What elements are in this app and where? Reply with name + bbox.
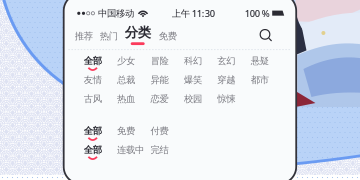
- staticText: 玄幻: [217, 55, 235, 67]
- button[interactable]: 科幻: [184, 55, 217, 71]
- button[interactable]: 异能: [150, 74, 184, 90]
- button[interactable]: 连载中: [117, 144, 150, 160]
- button[interactable]: 冒险: [150, 55, 184, 71]
- staticText: 爆笑: [184, 74, 202, 86]
- staticText: 少女: [117, 55, 135, 67]
- staticText: 热血: [117, 93, 135, 105]
- staticText: 全部: [84, 144, 102, 156]
- staticText: 完结: [150, 144, 168, 156]
- button[interactable]: 完结: [150, 144, 184, 160]
- button[interactable]: 爆笑: [184, 74, 217, 90]
- button[interactable]: 友情: [84, 74, 117, 90]
- staticText: 推荐: [75, 30, 93, 42]
- staticText: 校园: [184, 93, 202, 105]
- staticText: 免费: [117, 125, 135, 137]
- button[interactable]: 都市: [251, 74, 284, 90]
- button[interactable]: 全部: [84, 55, 117, 71]
- button[interactable]: 悬疑: [251, 55, 284, 71]
- button[interactable]: 热血: [117, 93, 150, 109]
- staticText: 异能: [150, 74, 168, 86]
- staticText: 免费: [159, 30, 177, 42]
- staticText: 连载中: [117, 144, 144, 156]
- staticText: 总裁: [117, 74, 135, 86]
- button[interactable]: 玄幻: [217, 55, 251, 71]
- button[interactable]: 恋爱: [150, 93, 184, 109]
- staticText: 恋爱: [150, 93, 168, 105]
- button[interactable]: 免费: [159, 30, 177, 45]
- staticText: 全部: [84, 55, 102, 67]
- staticText: 都市: [251, 74, 269, 86]
- staticText: 冒险: [150, 55, 168, 67]
- button[interactable]: 免费: [117, 125, 150, 141]
- staticText: 付费: [150, 125, 168, 137]
- button[interactable]: 总裁: [117, 74, 150, 90]
- button[interactable]: 校园: [184, 93, 217, 109]
- staticText: 惊悚: [217, 93, 235, 105]
- button[interactable]: 付费: [150, 125, 184, 141]
- staticText: 中国移动: [98, 8, 134, 19]
- staticText: 分类: [125, 24, 151, 41]
- button[interactable]: 热门: [100, 30, 125, 45]
- button[interactable]: Search: [260, 30, 274, 45]
- staticText: 全部: [84, 125, 102, 137]
- button[interactable]: 分类: [125, 24, 159, 45]
- staticText: 热门: [100, 30, 118, 42]
- staticText: 古风: [84, 93, 102, 105]
- button[interactable]: 穿越: [217, 74, 251, 90]
- button[interactable]: 惊悚: [217, 93, 251, 109]
- button[interactable]: 古风: [84, 93, 117, 109]
- staticText: 友情: [84, 74, 102, 86]
- staticText: 100 %: [245, 7, 270, 19]
- button[interactable]: 少女: [117, 55, 150, 71]
- staticText: 上午 11:30: [172, 7, 215, 19]
- button[interactable]: 推荐: [75, 30, 100, 45]
- staticText: 科幻: [184, 55, 202, 67]
- staticText: 穿越: [217, 74, 235, 86]
- button[interactable]: 全部: [84, 144, 117, 160]
- button[interactable]: 全部: [84, 125, 117, 141]
- staticText: 悬疑: [251, 55, 269, 67]
